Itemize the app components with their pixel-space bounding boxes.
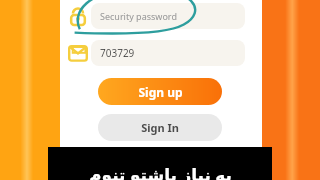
other: Email <box>67 43 89 63</box>
staticText: Sign up <box>138 84 183 100</box>
button[interactable]: Security password <box>91 3 245 29</box>
button[interactable]: Sign In <box>98 114 222 141</box>
staticText: 703729 <box>100 46 135 60</box>
button[interactable]: 703729 <box>91 40 245 66</box>
staticText: Sign In <box>141 120 179 135</box>
other: Password <box>67 5 89 27</box>
button[interactable]: Sign up <box>98 78 222 105</box>
staticText: Security password <box>100 10 177 22</box>
staticText: به نیاز باشتو تنوم <box>89 163 232 180</box>
